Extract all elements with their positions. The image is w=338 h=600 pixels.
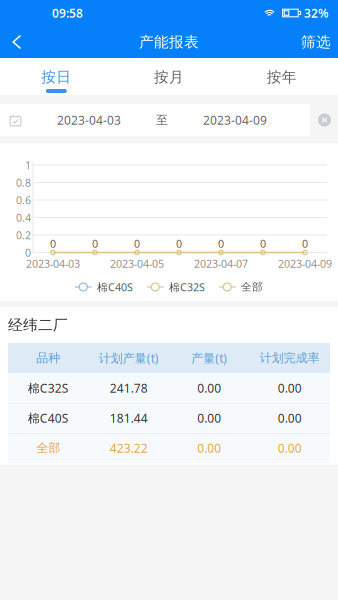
staticText: 423.22 xyxy=(110,440,148,456)
staticText: 0.2 xyxy=(16,228,31,242)
staticText: 32% xyxy=(304,5,329,21)
staticText: 0 xyxy=(25,245,31,260)
staticText: 1 xyxy=(25,158,31,172)
staticText: 按日 xyxy=(41,68,71,86)
staticText: 计划产量(t) xyxy=(99,350,159,366)
button[interactable]: 按月 xyxy=(113,58,225,95)
staticText: 0.00 xyxy=(278,410,302,426)
staticText: 2023-04-03 xyxy=(26,256,80,271)
staticText: 0 xyxy=(92,236,98,251)
staticText: 0 xyxy=(302,236,308,251)
button[interactable]: 按日 xyxy=(0,58,113,95)
staticText: 0 xyxy=(260,236,266,251)
staticText: 筛选 xyxy=(301,33,331,51)
staticText: 棉C32S xyxy=(169,280,205,294)
staticText: 0 xyxy=(176,236,182,251)
staticText: 181.44 xyxy=(110,410,148,426)
staticText: 0 xyxy=(218,236,224,251)
staticText: 0.8 xyxy=(16,175,31,190)
button[interactable]: Back xyxy=(0,26,34,58)
staticText: 09:58 xyxy=(52,5,83,21)
staticText: 全部 xyxy=(241,280,263,293)
staticText: 2023-04-09 xyxy=(203,112,267,128)
staticText: 0.00 xyxy=(197,380,221,396)
staticText: 2023-04-07 xyxy=(194,256,248,271)
button[interactable]: 2023-04-03 xyxy=(0,104,310,136)
staticText: 0.00 xyxy=(197,440,221,456)
button[interactable]: 按年 xyxy=(225,58,338,95)
button[interactable]: 筛选 xyxy=(294,26,338,58)
staticText: 2023-04-05 xyxy=(110,256,164,271)
staticText: 棉C40S xyxy=(97,280,133,294)
staticText: 2023-04-03 xyxy=(57,112,121,128)
staticText: 产能报表 xyxy=(139,33,199,51)
staticText: 0.4 xyxy=(16,210,31,225)
staticText: 计划完成率 xyxy=(260,351,320,365)
staticText: 0.00 xyxy=(278,440,302,456)
staticText: 241.78 xyxy=(110,380,148,396)
staticText: 至 xyxy=(156,113,168,127)
staticText: 0.00 xyxy=(278,380,302,396)
button[interactable]: Clear date range xyxy=(318,113,331,126)
staticText: 0 xyxy=(50,236,56,251)
staticText: 经纬二厂 xyxy=(8,316,68,334)
staticText: 棉C32S xyxy=(28,380,69,396)
staticText: 棉C40S xyxy=(28,410,69,426)
staticText: 0 xyxy=(134,236,140,251)
staticText: 0.00 xyxy=(197,410,221,426)
staticText: 全部 xyxy=(36,441,60,455)
staticText: 0.6 xyxy=(16,193,31,207)
staticText: 品种 xyxy=(36,351,60,365)
staticText: 按月 xyxy=(154,68,184,86)
staticText: 产量(t) xyxy=(191,350,227,366)
staticText: 按年 xyxy=(267,68,297,86)
staticText: 2023-04-09 xyxy=(278,256,332,271)
